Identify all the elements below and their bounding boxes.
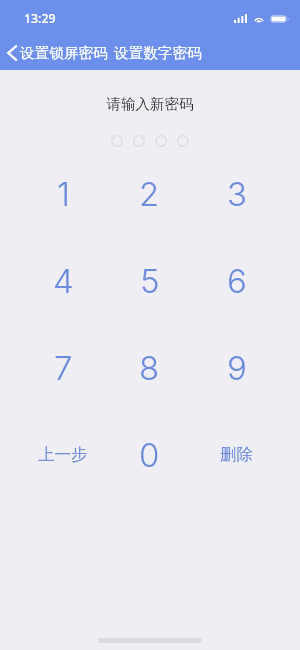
staticText: 请输入新密码 — [0, 95, 300, 113]
staticText: 0 — [139, 435, 160, 475]
staticText: 删除 — [220, 444, 253, 465]
staticText: 8 — [139, 348, 160, 388]
staticText: 3 — [227, 174, 247, 214]
staticText: 13:29 — [24, 10, 56, 27]
staticText: 1 — [57, 174, 70, 214]
button[interactable]: 上一步 — [20, 411, 106, 498]
button[interactable]: 删除 — [193, 411, 280, 498]
button[interactable]: 6 — [193, 237, 280, 324]
staticText: 上一步 — [38, 444, 88, 465]
staticText: 6 — [227, 261, 247, 301]
staticText: 5 — [140, 261, 160, 301]
staticText: 2 — [139, 174, 160, 214]
button[interactable]: Back — [0, 36, 23, 70]
staticText: 设置数字密码 — [114, 44, 202, 62]
button[interactable]: 5 — [106, 237, 193, 324]
button[interactable]: 设置锁屏密码 — [20, 44, 108, 62]
button[interactable]: 8 — [106, 324, 193, 411]
button[interactable]: 2 — [106, 150, 193, 237]
staticText: 7 — [54, 348, 73, 388]
staticText: 9 — [227, 348, 247, 388]
button[interactable]: 7 — [20, 324, 106, 411]
button[interactable]: 0 — [106, 411, 193, 498]
button[interactable]: 9 — [193, 324, 280, 411]
staticText: 4 — [53, 261, 74, 301]
button[interactable]: 4 — [20, 237, 106, 324]
button[interactable]: 1 — [20, 150, 106, 237]
button[interactable]: 3 — [193, 150, 280, 237]
